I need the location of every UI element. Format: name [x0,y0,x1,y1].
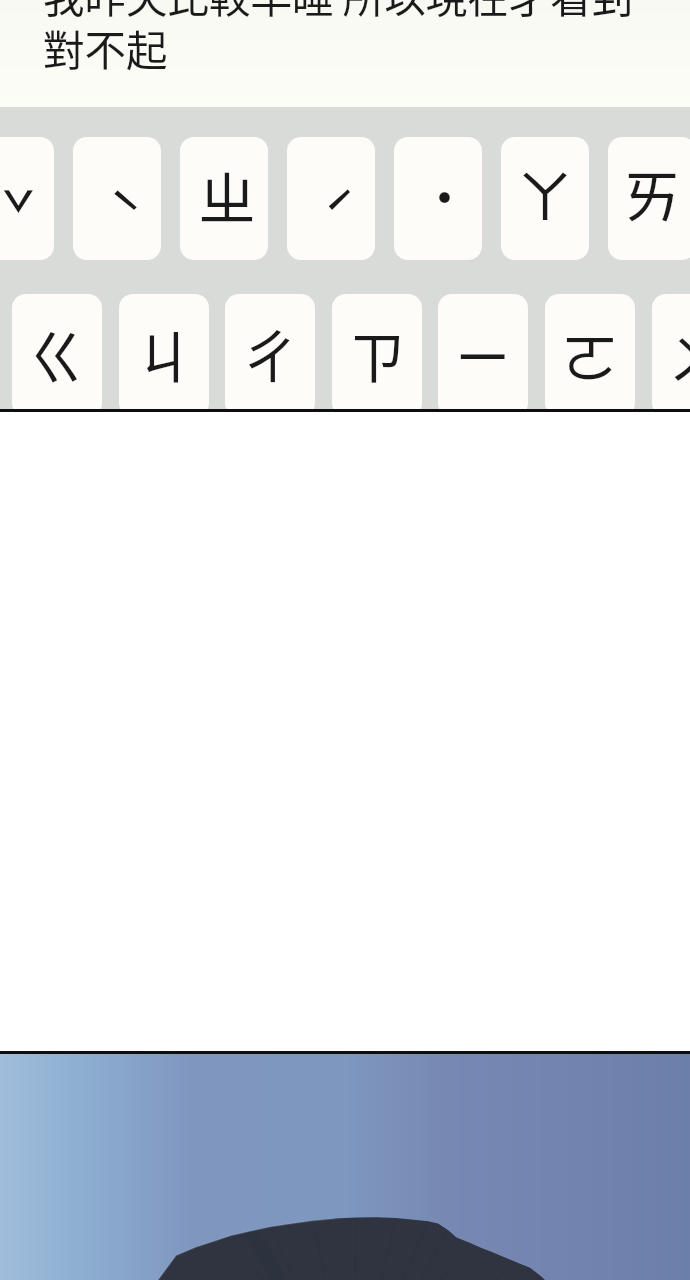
button[interactable]: Key ㄔ [225,294,315,409]
button[interactable]: Key ˊ [287,137,375,260]
staticText: ˊ [322,172,357,256]
button[interactable]: Key ㄛ [545,294,635,409]
staticText: ㄗ [348,312,407,396]
button[interactable]: Key ㄓ [180,137,268,260]
staticText: ㄧ [454,312,513,396]
staticText: ㄓ [198,153,257,237]
staticText: ㄨ [668,312,690,396]
staticText: ㄔ [241,312,300,396]
button[interactable]: Key ㄍ [12,294,102,409]
staticText: ㄚ [516,151,575,235]
button[interactable]: Key ㄞ [608,137,690,260]
staticText: 對不起 [43,18,168,78]
button[interactable]: Key ㄐ [119,294,209,409]
staticText: ㄍ [28,312,87,396]
staticText: ˙ [430,153,460,237]
staticText: ㄞ [623,151,682,235]
button[interactable]: Key ㄨ [652,294,690,409]
staticText: ㄐ [135,312,194,396]
staticText: ˇ [1,171,36,255]
staticText: 我昨天比較早睡 所以現在才看到 [43,0,634,25]
staticText: ㄛ [561,312,620,396]
button[interactable]: Key ˙ [394,137,482,260]
button[interactable]: Key ㄗ [332,294,422,409]
button[interactable]: Key ㄧ [438,294,528,409]
button[interactable]: Key ˇ [0,137,54,260]
staticText: ˋ [108,171,143,255]
button[interactable]: Key ˋ [73,137,161,260]
button[interactable]: Key ㄚ [501,137,589,260]
